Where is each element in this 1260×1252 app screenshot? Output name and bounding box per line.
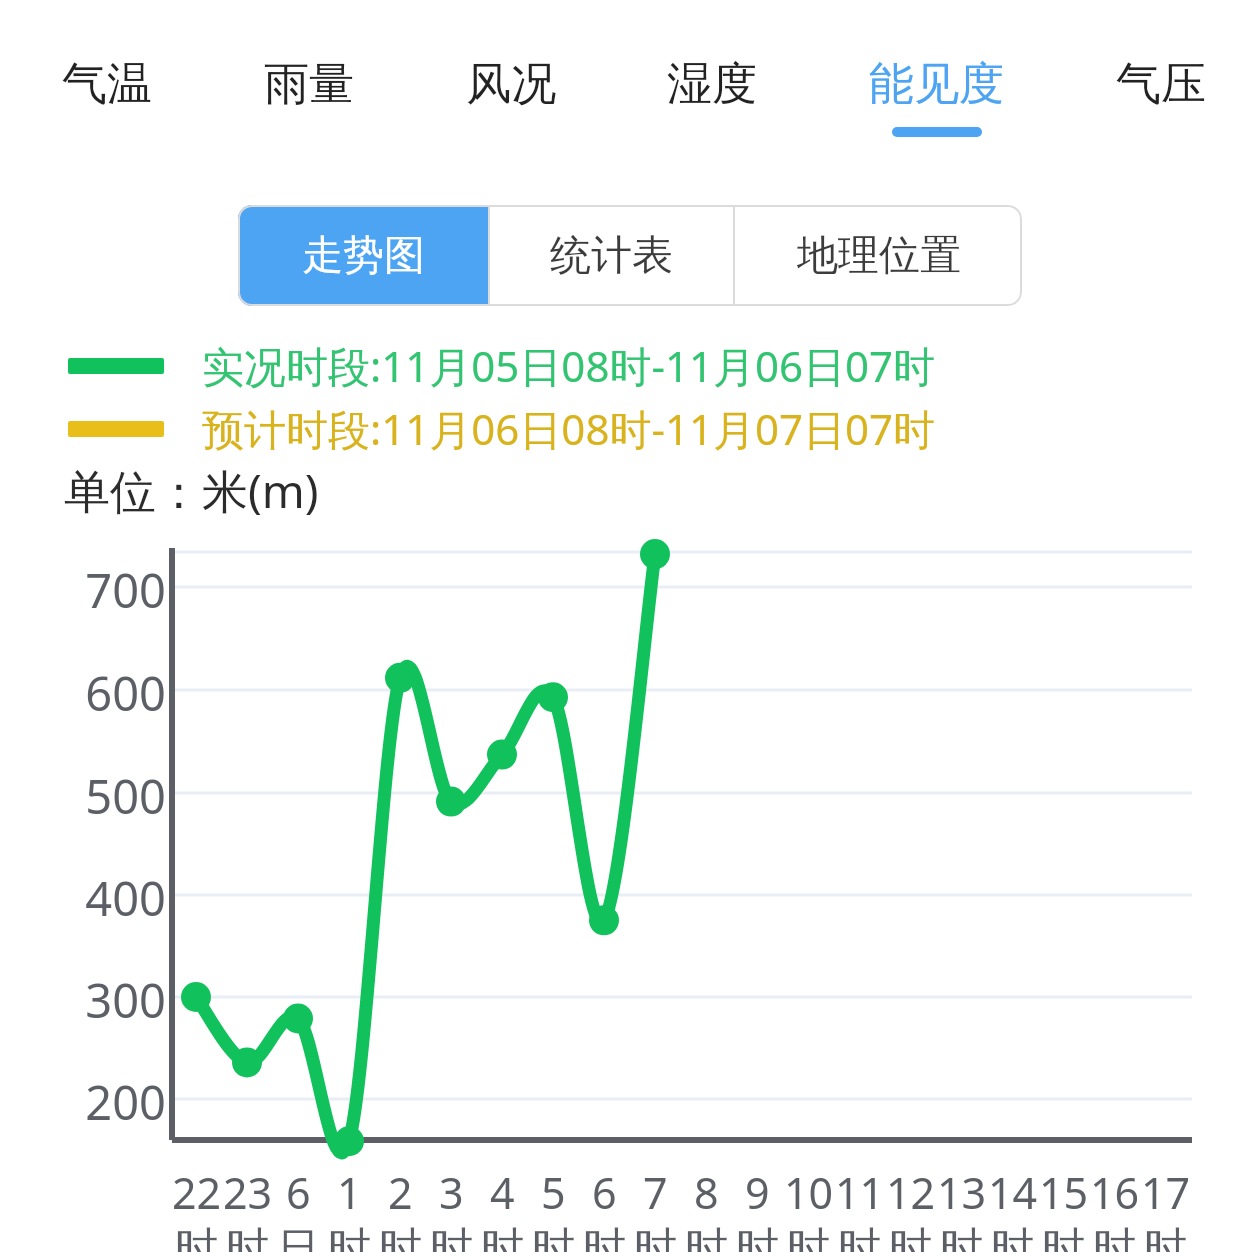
staticText: 湿度	[667, 56, 757, 113]
staticText: 700	[60, 558, 166, 622]
staticText: 能见度	[869, 56, 1004, 113]
staticText: 12	[886, 1163, 936, 1222]
staticText: 15	[1039, 1163, 1089, 1222]
staticText: 500	[60, 764, 166, 828]
staticText: 时	[787, 1222, 830, 1252]
button[interactable]: 气温	[62, 56, 152, 137]
staticText: 统计表	[550, 230, 673, 282]
staticText: 5	[541, 1163, 566, 1222]
button[interactable]: 走势图	[238, 205, 488, 306]
staticText: 22	[172, 1163, 222, 1222]
staticText: 时	[328, 1222, 371, 1252]
staticText: 雨量	[264, 56, 354, 113]
staticText: 风况	[466, 56, 556, 113]
staticText: 3	[439, 1163, 464, 1222]
staticText: 时	[1042, 1222, 1085, 1252]
staticText: 23	[223, 1163, 273, 1222]
staticText: 300	[60, 968, 166, 1032]
staticText: 时	[1093, 1222, 1136, 1252]
staticText: 14	[988, 1163, 1038, 1222]
staticText: 气压	[1116, 56, 1206, 113]
staticText: 时	[634, 1222, 677, 1252]
staticText: 时	[838, 1222, 881, 1252]
staticText: 时	[1144, 1222, 1187, 1252]
button[interactable]: 地理位置	[735, 205, 1022, 306]
staticText: 200	[60, 1070, 166, 1134]
staticText: 单位：米(m)	[64, 459, 319, 522]
staticText: 时	[379, 1222, 422, 1252]
button[interactable]: 能见度	[869, 56, 1004, 137]
staticText: 预计时段:11月06日08时-11月07日07时	[202, 400, 936, 457]
staticText: 时	[583, 1222, 626, 1252]
button[interactable]: 湿度	[667, 56, 757, 137]
staticText: 时	[175, 1222, 218, 1252]
staticText: 6	[286, 1163, 311, 1222]
staticText: 11	[835, 1163, 885, 1222]
staticText: 10	[784, 1163, 834, 1222]
button[interactable]: 雨量	[264, 56, 354, 137]
staticText: 日	[277, 1222, 320, 1252]
button[interactable]: 气压	[1116, 56, 1206, 137]
staticText: 13	[937, 1163, 987, 1222]
staticText: 16	[1090, 1163, 1140, 1222]
staticText: 4	[490, 1163, 515, 1222]
staticText: 1	[337, 1163, 362, 1222]
staticText: 时	[685, 1222, 728, 1252]
staticText: 7	[643, 1163, 668, 1222]
staticText: 时	[736, 1222, 779, 1252]
staticText: 地理位置	[797, 230, 961, 282]
staticText: 17	[1141, 1163, 1191, 1222]
staticText: 时	[889, 1222, 932, 1252]
staticText: 9	[745, 1163, 770, 1222]
staticText: 400	[60, 866, 166, 930]
staticText: 时	[940, 1222, 983, 1252]
staticText: 走势图	[302, 230, 425, 282]
button[interactable]: 统计表	[490, 205, 733, 306]
staticText: 实况时段:11月05日08时-11月06日07时	[202, 337, 936, 394]
staticText: 气温	[62, 56, 152, 113]
staticText: 时	[481, 1222, 524, 1252]
staticText: 时	[430, 1222, 473, 1252]
staticText: 时	[991, 1222, 1034, 1252]
button[interactable]: 风况	[466, 56, 556, 137]
staticText: 时	[532, 1222, 575, 1252]
staticText: 8	[694, 1163, 719, 1222]
staticText: 时	[226, 1222, 269, 1252]
staticText: 600	[60, 661, 166, 725]
staticText: 2	[388, 1163, 413, 1222]
staticText: 6	[592, 1163, 617, 1222]
